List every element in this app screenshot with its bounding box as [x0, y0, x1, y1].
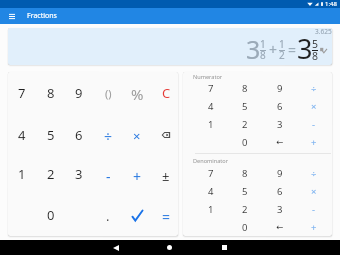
- staticText: 9: [277, 82, 283, 95]
- button[interactable]: 4: [194, 182, 228, 200]
- staticText: (): [105, 86, 112, 101]
- staticText: .: [106, 207, 110, 225]
- staticText: 4: [208, 100, 214, 113]
- button[interactable]: Home: [160, 240, 178, 255]
- staticText: C: [162, 84, 171, 102]
- staticText: 3: [297, 30, 313, 65]
- button[interactable]: 2: [37, 154, 65, 194]
- button[interactable]: 9: [65, 73, 93, 113]
- button[interactable]: 2: [228, 115, 262, 133]
- staticText: ×: [311, 185, 317, 198]
- staticText: 5: [242, 100, 248, 113]
- staticText: 5: [47, 126, 55, 144]
- button[interactable]: 1: [8, 154, 36, 194]
- staticText: 2: [47, 165, 55, 183]
- staticText: 0: [47, 206, 55, 224]
- button[interactable]: 7: [194, 79, 228, 97]
- staticText: ←: [276, 222, 284, 232]
- staticText: +: [311, 136, 317, 149]
- button[interactable]: 4: [194, 97, 228, 115]
- staticText: =: [288, 40, 297, 59]
- staticText: %: [131, 84, 144, 104]
- staticText: 1: [260, 37, 266, 51]
- button[interactable]: 9: [263, 79, 297, 97]
- button[interactable]: 7: [8, 73, 36, 113]
- staticText: +: [133, 167, 142, 186]
- button[interactable]: 2: [228, 200, 262, 218]
- button[interactable]: 5: [37, 115, 65, 155]
- staticText: 8: [312, 49, 319, 63]
- button[interactable]: C: [152, 73, 178, 113]
- button[interactable]: 6: [65, 115, 93, 155]
- button[interactable]: Open navigation menu: [6, 10, 18, 22]
- staticText: 2: [279, 48, 285, 62]
- staticText: +: [311, 221, 317, 234]
- staticText: Fractions: [27, 11, 57, 21]
- button[interactable]: +: [297, 133, 331, 151]
- button[interactable]: Recent apps: [215, 240, 233, 255]
- button[interactable]: ←: [263, 218, 297, 236]
- button[interactable]: 0: [37, 195, 65, 235]
- button[interactable]: 9: [263, 164, 297, 182]
- button[interactable]: 5: [228, 182, 262, 200]
- button[interactable]: -: [297, 115, 331, 133]
- button[interactable]: .: [94, 196, 122, 236]
- button[interactable]: =: [152, 196, 178, 236]
- staticText: 8: [242, 82, 248, 95]
- button[interactable]: 8: [228, 79, 262, 97]
- button[interactable]: +: [297, 218, 331, 236]
- button[interactable]: ÷: [297, 164, 331, 182]
- button[interactable]: -: [297, 200, 331, 218]
- button[interactable]: 8: [228, 164, 262, 182]
- button[interactable]: 4: [8, 115, 36, 155]
- button[interactable]: 6: [263, 182, 297, 200]
- staticText: 1: [279, 37, 285, 51]
- staticText: 9: [75, 84, 83, 102]
- button[interactable]: 3.625: [8, 28, 332, 65]
- button[interactable]: ←: [263, 133, 297, 151]
- button[interactable]: Copy result: [319, 46, 327, 54]
- button[interactable]: ×: [297, 97, 331, 115]
- staticText: 3: [277, 118, 283, 131]
- staticText: 8: [260, 48, 266, 62]
- button[interactable]: 5: [228, 97, 262, 115]
- staticText: ×: [311, 100, 317, 113]
- staticText: ×: [133, 127, 141, 145]
- button[interactable]: Back: [107, 240, 125, 255]
- button[interactable]: ±: [152, 156, 178, 196]
- staticText: 4: [208, 185, 214, 198]
- button[interactable]: 1: [194, 200, 228, 218]
- button[interactable]: 0: [228, 133, 262, 151]
- button[interactable]: 1: [194, 115, 228, 133]
- button[interactable]: ÷: [297, 79, 331, 97]
- button[interactable]: (): [94, 73, 122, 113]
- button[interactable]: ÷: [94, 116, 122, 156]
- staticText: ±: [162, 167, 170, 185]
- staticText: -: [312, 203, 316, 216]
- button[interactable]: Backspace: [152, 115, 178, 155]
- button[interactable]: 0: [228, 218, 262, 236]
- button[interactable]: 6: [263, 97, 297, 115]
- staticText: 1: [208, 118, 214, 131]
- staticText: 7: [208, 82, 214, 95]
- button[interactable]: 3: [263, 200, 297, 218]
- staticText: ÷: [311, 167, 317, 180]
- staticText: 6: [277, 185, 283, 198]
- button[interactable]: %: [123, 74, 151, 114]
- staticText: =: [162, 207, 171, 226]
- button[interactable]: ×: [297, 182, 331, 200]
- button[interactable]: -: [94, 156, 122, 196]
- button[interactable]: +: [123, 156, 151, 196]
- button[interactable]: 7: [194, 164, 228, 182]
- button[interactable]: ×: [123, 116, 151, 156]
- button[interactable]: 8: [37, 73, 65, 113]
- button[interactable]: 3: [263, 115, 297, 133]
- staticText: 3.625: [315, 28, 332, 36]
- staticText: 8: [47, 84, 55, 102]
- staticText: 5: [242, 185, 248, 198]
- button[interactable]: 3: [65, 154, 93, 194]
- staticText: 1:48: [325, 0, 337, 8]
- staticText: ÷: [104, 127, 113, 146]
- staticText: 6: [277, 100, 283, 113]
- button[interactable]: Calculate: [123, 195, 151, 235]
